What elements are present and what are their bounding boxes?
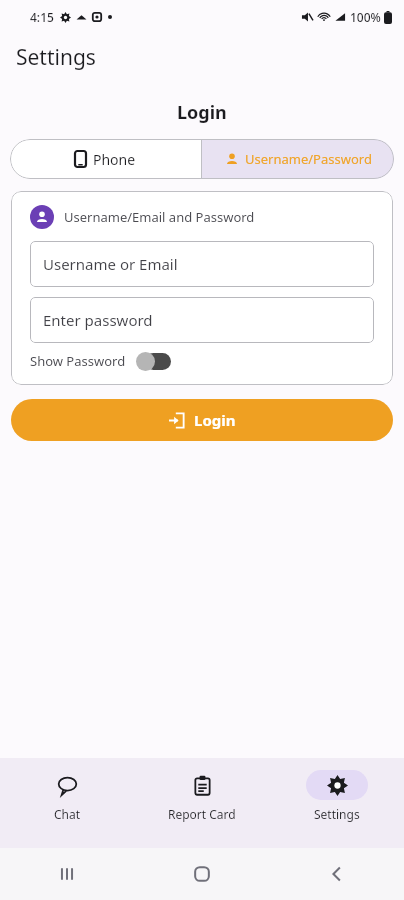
staticText: Login bbox=[177, 100, 227, 125]
staticText: Username or Email bbox=[43, 254, 178, 274]
staticText: Username/Email and Password bbox=[64, 208, 255, 226]
button[interactable]: Username/Password bbox=[202, 139, 394, 179]
staticText: 4:15 bbox=[30, 9, 54, 25]
staticText: Login bbox=[194, 410, 236, 430]
staticText: Settings bbox=[314, 806, 360, 822]
staticText: Settings bbox=[16, 43, 96, 72]
button[interactable]: Phone bbox=[10, 139, 201, 179]
button[interactable]: Login bbox=[11, 399, 393, 441]
staticText: Phone bbox=[93, 150, 136, 169]
button[interactable]: Report Card bbox=[134, 758, 269, 822]
staticText: Show Password bbox=[30, 352, 126, 370]
staticText: Report Card bbox=[168, 806, 236, 822]
staticText: Username/Password bbox=[245, 150, 372, 168]
button[interactable]: Show Password bbox=[30, 351, 172, 371]
button[interactable]: Username or Email bbox=[30, 241, 374, 287]
button[interactable]: Back bbox=[269, 865, 404, 883]
staticText: 100% bbox=[350, 9, 381, 25]
staticText: Enter password bbox=[43, 310, 153, 330]
staticText: Chat bbox=[54, 806, 81, 822]
button[interactable]: Enter password bbox=[30, 297, 374, 343]
button[interactable]: Settings bbox=[269, 758, 404, 822]
button[interactable]: Home bbox=[134, 865, 269, 883]
button[interactable]: Recent apps bbox=[0, 865, 134, 883]
button[interactable]: Chat bbox=[0, 758, 134, 822]
